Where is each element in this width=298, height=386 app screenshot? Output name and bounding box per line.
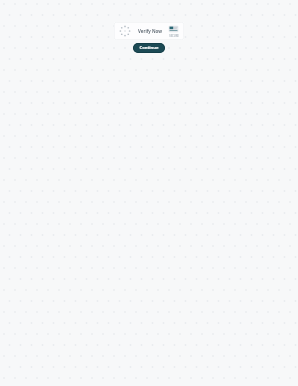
staticText: SECURE [169,34,179,38]
staticText: Verify Now [138,28,162,34]
button[interactable]: Verify Now [114,22,184,40]
button[interactable]: Continue [133,43,165,53]
staticText: Continue [139,45,159,51]
